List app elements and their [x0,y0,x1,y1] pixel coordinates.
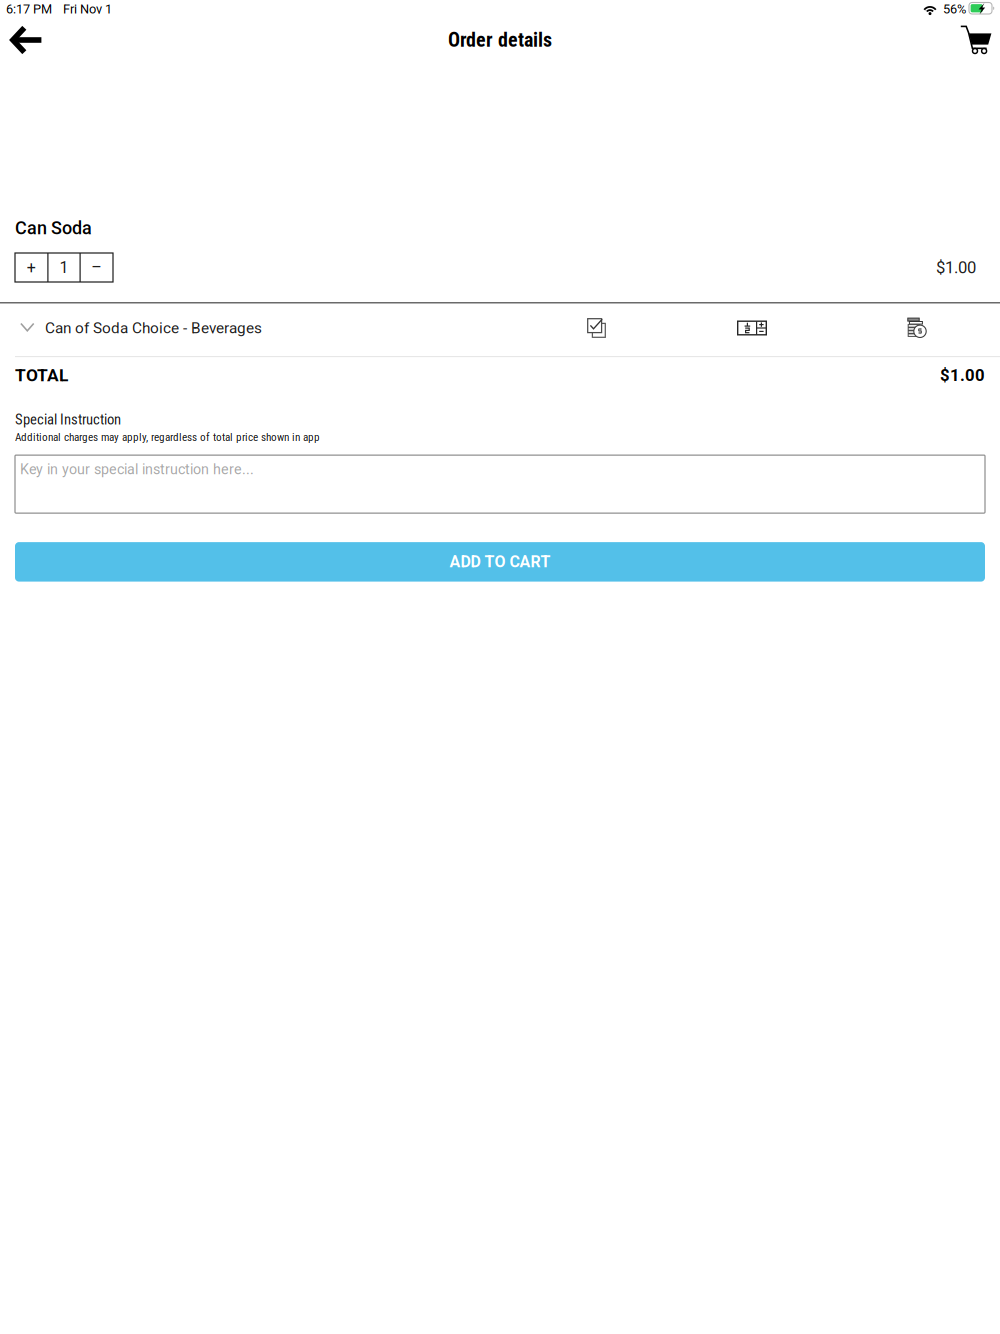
button[interactable]: Decrease quantity [81,253,113,282]
button[interactable]: Can of Soda Choice - Beverages [0,303,1000,356]
staticText: 6:17 PM [6,1,52,16]
button[interactable]: Increase quantity [15,253,47,282]
staticText: TOTAL [15,365,68,385]
staticText: Special Instruction [15,411,121,428]
staticText: Additional charges may apply, regardless… [15,430,320,444]
staticText: 1 [59,258,68,277]
staticText: Can of Soda Choice - Beverages [45,319,262,337]
staticText: Key in your special instruction here... [20,461,254,478]
staticText: – [91,258,102,277]
staticText: Can Soda [15,217,92,239]
staticText: $1.00 [936,258,976,277]
staticText: Order details [448,28,552,52]
staticText: ADD TO CART [449,552,550,571]
button[interactable]: Shopping cart [948,18,1000,62]
staticText: Fri Nov 1 [63,1,112,16]
staticText: $1.00 [940,365,985,385]
staticText: 56% [943,1,966,16]
button[interactable]: ADD TO CART [15,542,985,582]
staticText: + [27,258,36,277]
button[interactable]: Back [0,18,56,62]
